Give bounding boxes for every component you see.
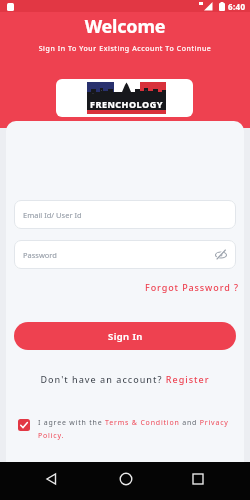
staticText: Forgot Password ? [145, 281, 239, 293]
button[interactable]: Sign In [14, 322, 236, 350]
staticText: FRENCHOLOGY [90, 98, 164, 110]
staticText: 6:40 [228, 1, 246, 12]
staticText: Password [23, 250, 57, 260]
button[interactable] [111, 466, 141, 496]
staticText: Sign In [108, 330, 143, 343]
staticText: I agree with the Terms & Condition and P… [38, 418, 238, 440]
staticText: Don't have an account? Register [0, 373, 250, 385]
button[interactable]: Email Id/ User Id [14, 200, 236, 229]
button[interactable]: Forgot Password ? [145, 281, 239, 293]
button[interactable] [183, 466, 213, 496]
staticText: Email Id/ User Id [23, 210, 82, 220]
button[interactable]: Password [14, 240, 236, 269]
staticText: Welcome [0, 14, 250, 39]
button[interactable]: Don't have an account? Register [0, 373, 250, 385]
button[interactable] [36, 466, 66, 496]
button[interactable] [18, 419, 30, 431]
staticText: Sign In To Your Existing Account To Cont… [0, 44, 250, 54]
